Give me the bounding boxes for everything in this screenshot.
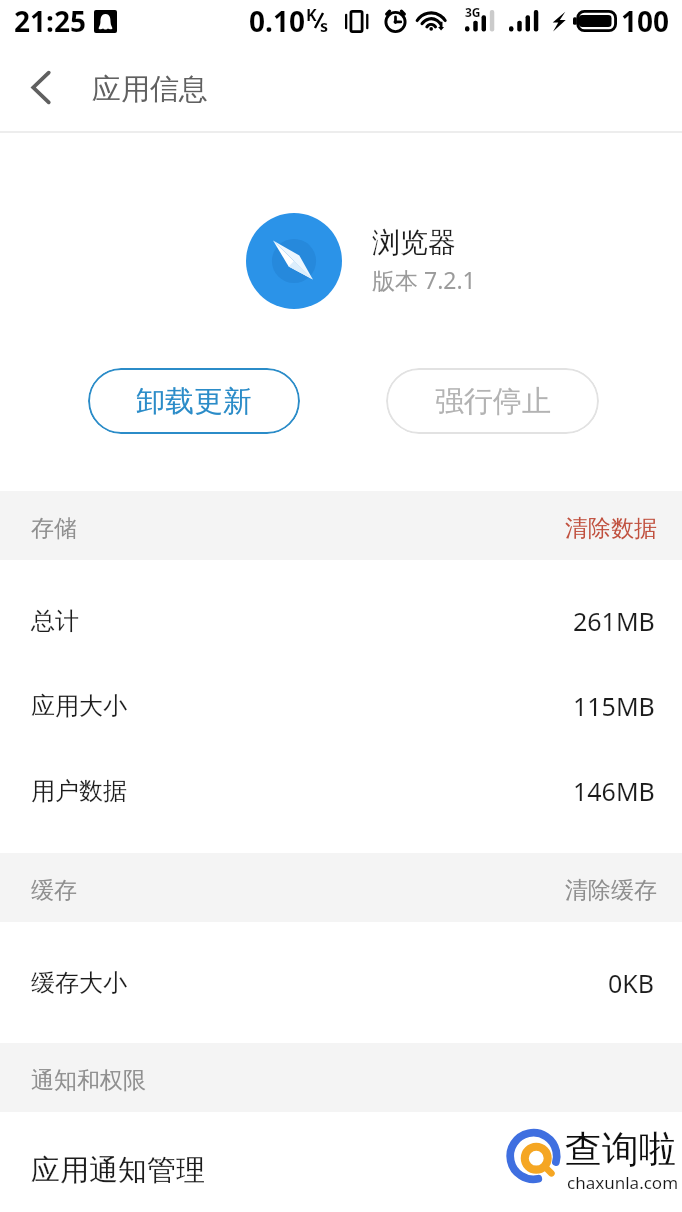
button[interactable]: 用户数据 [0, 748, 682, 833]
staticText: 应用大小 [31, 691, 127, 721]
staticText: 清除缓存 [565, 876, 657, 905]
staticText: 应用信息 [92, 71, 208, 108]
staticText: 缓存 [31, 876, 77, 905]
staticText: 261MB [573, 604, 655, 638]
staticText: 缓存大小 [31, 968, 127, 998]
staticText: 通知和权限 [31, 1066, 146, 1095]
staticText: 0KB [608, 966, 655, 1000]
staticText: 版本 7.2.1 [372, 264, 476, 295]
staticText: 21:25 [14, 2, 86, 40]
staticText: 强行停止 [435, 383, 551, 420]
staticText: 总计 [31, 606, 79, 636]
staticText: s [320, 15, 329, 37]
staticText: K [306, 4, 317, 26]
staticText: 应用通知管理 [31, 1152, 205, 1189]
button[interactable]: 强行停止 [386, 368, 599, 434]
staticText: 用户数据 [31, 776, 127, 806]
button[interactable]: 总计 [0, 578, 682, 663]
button[interactable]: 卸载更新 [88, 368, 300, 434]
staticText: 浏览器 [372, 225, 456, 260]
button[interactable]: 清除缓存 [565, 876, 682, 905]
staticText: 115MB [573, 689, 655, 723]
button[interactable]: Back [5, 51, 77, 123]
staticText: 存储 [31, 514, 77, 543]
staticText: 146MB [573, 774, 655, 808]
button[interactable]: 缓存大小 [0, 940, 682, 1025]
staticText: 清除数据 [565, 514, 657, 543]
staticText: 100 [621, 2, 670, 40]
button[interactable]: 清除数据 [565, 514, 682, 543]
staticText: 3G [465, 4, 481, 20]
button[interactable]: 应用通知管理 [0, 1128, 682, 1212]
staticText: 查询啦 [565, 1126, 676, 1173]
staticText: 0.10 [249, 2, 305, 40]
button[interactable]: 应用大小 [0, 663, 682, 748]
staticText: chaxunla.com [567, 1171, 679, 1194]
staticText: 卸载更新 [136, 383, 252, 420]
